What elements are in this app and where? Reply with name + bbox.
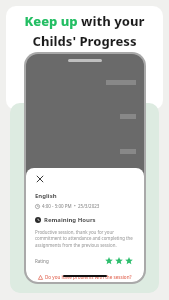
staticText: Remaining Hours	[44, 216, 96, 224]
staticText: Productive session, thank you for your c…	[35, 229, 135, 249]
staticText: Childs' Progress	[32, 32, 137, 50]
button[interactable]: Star rating	[105, 257, 113, 265]
staticText: Do you have problems with the session?	[45, 274, 132, 280]
button[interactable]: Star rating	[125, 257, 133, 265]
staticText: 4:00 - 5:00 PM • 25/3/2023	[42, 203, 100, 209]
staticText: Rating	[35, 258, 49, 264]
button[interactable]: Do you have problems with the session?	[35, 274, 135, 280]
button[interactable]: Close	[35, 174, 45, 184]
staticText: English	[35, 192, 57, 200]
staticText: Keep up with your	[24, 12, 145, 30]
button[interactable]: Star rating	[115, 257, 123, 265]
